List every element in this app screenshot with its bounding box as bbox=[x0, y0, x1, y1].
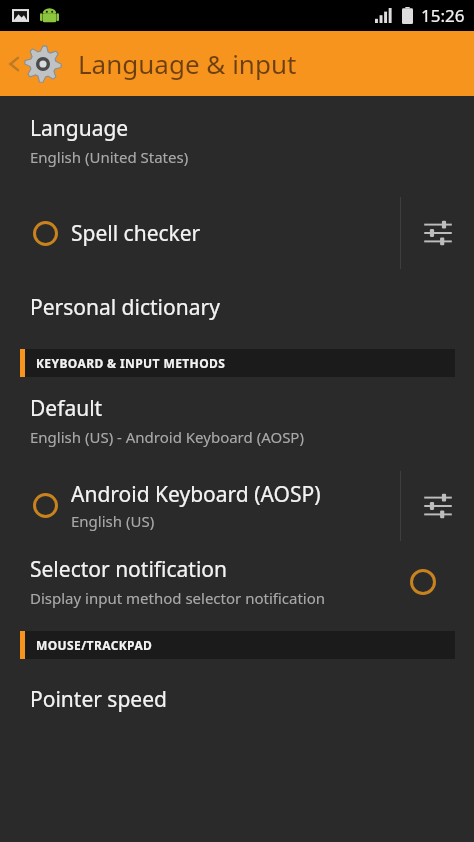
staticText: Default bbox=[30, 394, 103, 423]
staticText: Display input method selector notificati… bbox=[30, 588, 326, 608]
staticText: Pointer speed bbox=[30, 685, 167, 714]
staticText: Language & input bbox=[78, 46, 297, 81]
staticText: Personal dictionary bbox=[30, 293, 220, 322]
staticText: MOUSE/TRACKPAD bbox=[36, 637, 153, 653]
button[interactable]: Settings bbox=[416, 211, 460, 255]
staticText: 15:26 bbox=[421, 4, 465, 27]
button[interactable]: Pointer speed bbox=[0, 679, 474, 728]
button[interactable]: Personal dictionary bbox=[0, 285, 474, 336]
button[interactable]: Language & input bbox=[0, 31, 474, 96]
button[interactable]: Spell checker bbox=[0, 195, 400, 271]
button[interactable]: Default bbox=[0, 389, 474, 453]
button[interactable]: Selector notification bbox=[0, 549, 474, 618]
staticText: Spell checker bbox=[71, 219, 201, 248]
button[interactable]: Settings bbox=[416, 484, 460, 528]
staticText: English (US) bbox=[71, 511, 155, 531]
staticText: KEYBOARD & INPUT METHODS bbox=[36, 355, 226, 371]
staticText: English (US) - Android Keyboard (AOSP) bbox=[30, 427, 304, 447]
staticText: English (United States) bbox=[30, 147, 189, 167]
staticText: Selector notification bbox=[30, 555, 228, 584]
button[interactable]: Language bbox=[0, 96, 474, 173]
staticText: Android Keyboard (AOSP) bbox=[71, 480, 321, 509]
staticText: Language bbox=[30, 114, 129, 143]
button[interactable]: Android Keyboard (AOSP) bbox=[0, 468, 400, 543]
